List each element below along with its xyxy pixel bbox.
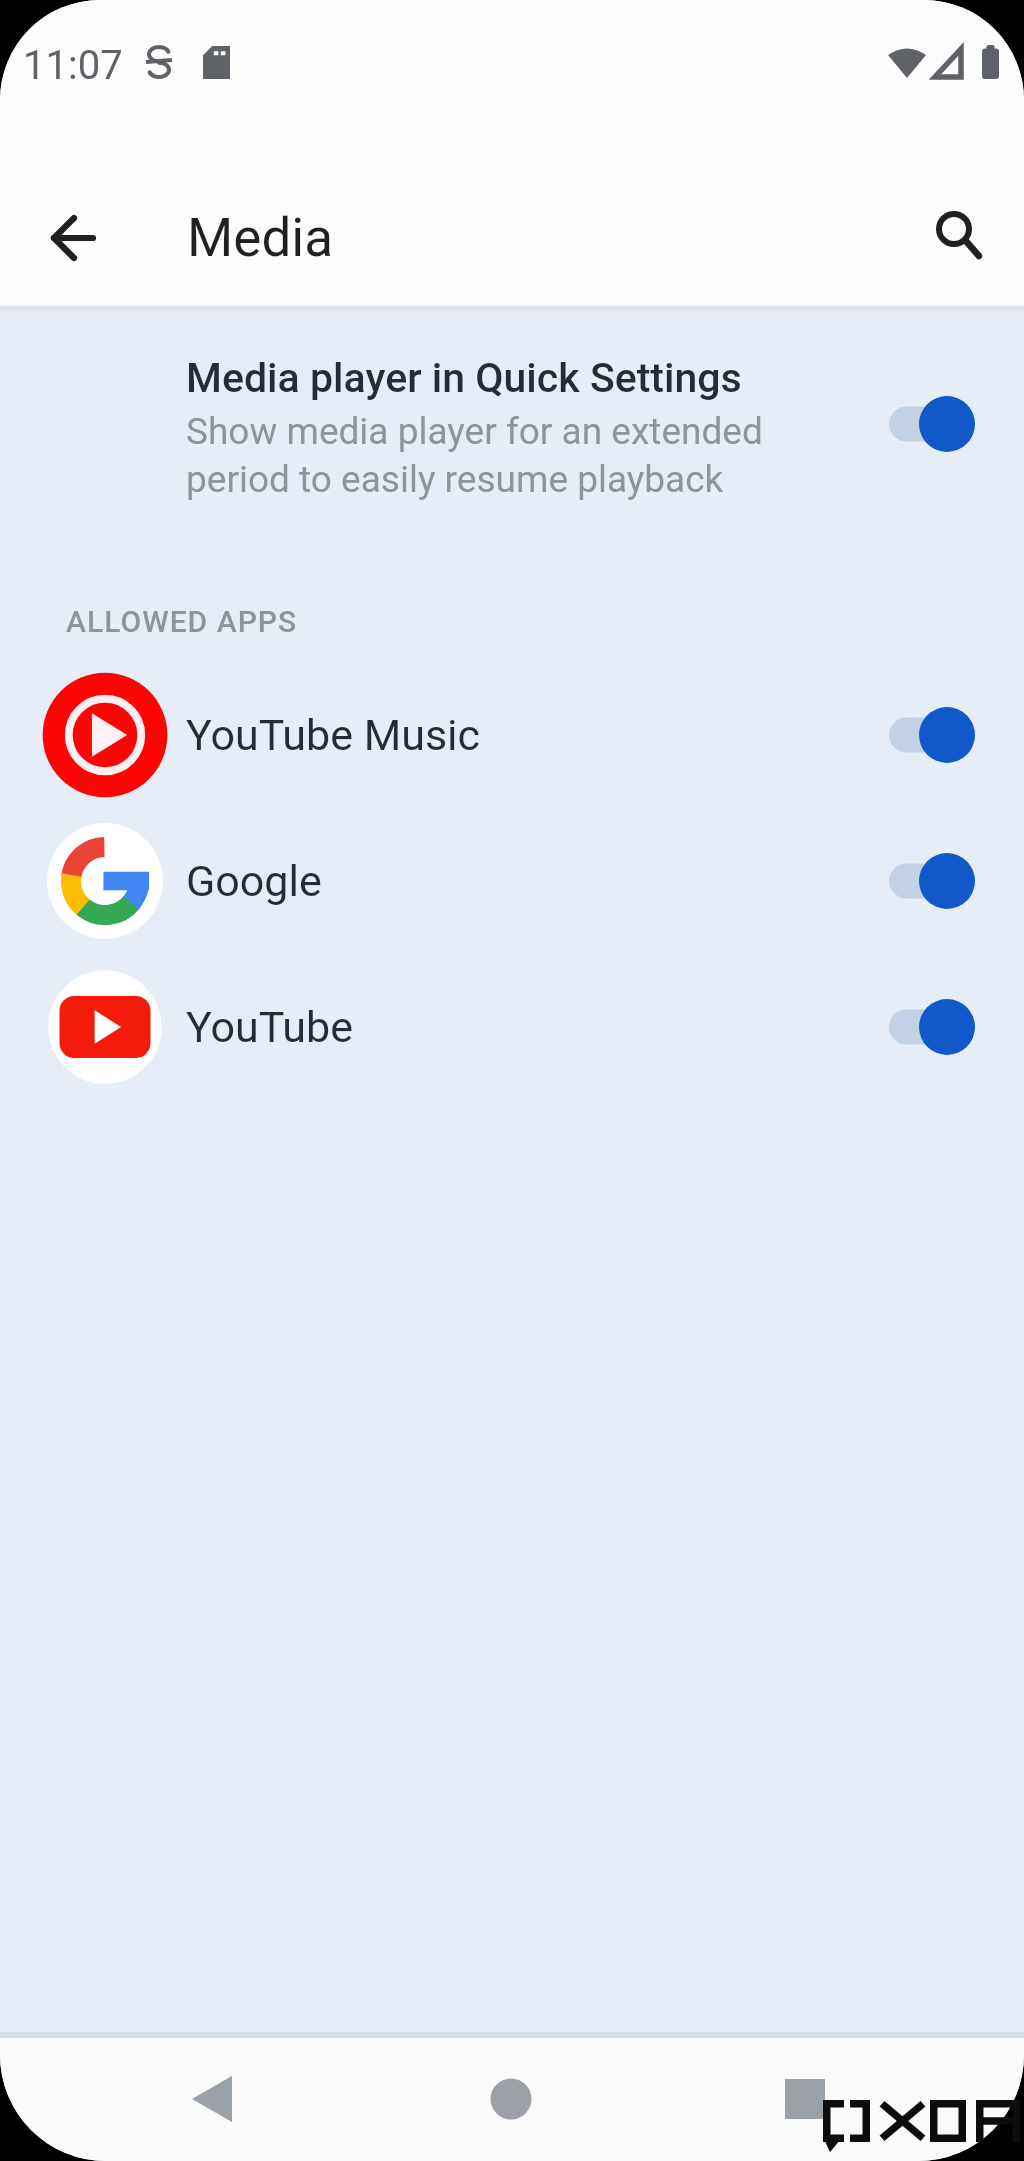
staticText: Media player in Quick Settings (186, 354, 742, 402)
button[interactable]: Toggle (889, 999, 975, 1055)
button[interactable]: Toggle (889, 853, 975, 909)
staticText: Media (187, 207, 333, 269)
button[interactable]: Media player in Quick Settings (0, 340, 1024, 530)
button[interactable]: YouTube (0, 954, 1024, 1100)
button[interactable]: Back (162, 2049, 262, 2149)
button[interactable]: YouTube Music (0, 662, 1024, 808)
staticText: YouTube (186, 1002, 354, 1052)
button[interactable]: Back (22, 188, 122, 288)
button[interactable]: Toggle (889, 707, 975, 763)
button[interactable]: Search (902, 188, 1002, 288)
staticText: Google (186, 856, 322, 906)
staticText: 11:07 (23, 42, 123, 89)
button[interactable]: Toggle (889, 396, 975, 452)
button[interactable]: Home (461, 2049, 561, 2149)
button[interactable]: Google (0, 808, 1024, 954)
staticText: Show media player for an extended period… (186, 410, 826, 501)
staticText: YouTube Music (186, 710, 481, 760)
button[interactable]: Recent apps (755, 2049, 855, 2149)
staticText: ALLOWED APPS (66, 604, 298, 639)
